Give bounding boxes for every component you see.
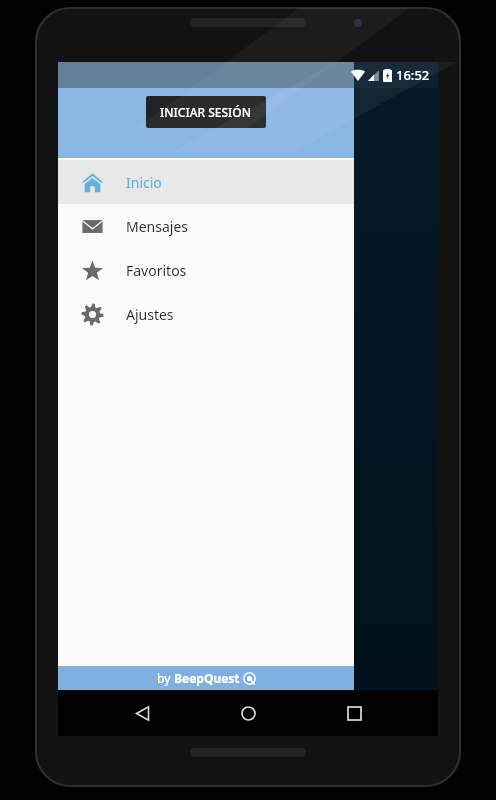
staticText: BeepQuest [174, 670, 243, 686]
button[interactable]: INICIAR SESIÓN [146, 96, 266, 128]
button[interactable]: Back [120, 691, 164, 735]
button[interactable]: Ajustes [58, 292, 354, 336]
staticText: Mensajes [126, 217, 189, 236]
button[interactable]: by [58, 666, 354, 690]
staticText: Ajustes [126, 305, 174, 324]
button[interactable]: Recent apps [332, 691, 376, 735]
staticText: Inicio [126, 173, 162, 192]
button[interactable]: Inicio [58, 160, 354, 204]
button[interactable]: Favoritos [58, 248, 354, 292]
staticText: INICIAR SESIÓN [160, 104, 252, 120]
staticText: Favoritos [126, 261, 187, 280]
staticText: 16:52 [396, 66, 430, 84]
staticText: by [157, 670, 174, 686]
button[interactable]: Mensajes [58, 204, 354, 248]
button[interactable]: Home [226, 691, 270, 735]
